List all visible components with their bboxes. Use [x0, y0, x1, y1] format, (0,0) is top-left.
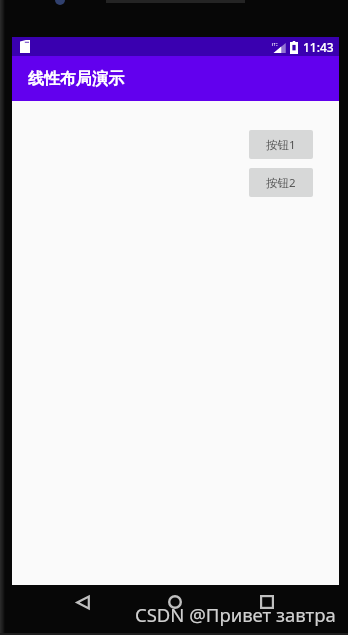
button[interactable]: 按钮2: [249, 168, 313, 197]
staticText: 按钮1: [266, 137, 296, 153]
button[interactable]: Recents: [254, 589, 279, 614]
button[interactable]: Home: [162, 589, 187, 614]
button[interactable]: 按钮1: [249, 130, 313, 159]
staticText: CSDN @Привет завтра: [135, 602, 336, 627]
staticText: 线性布局演示: [28, 69, 124, 89]
staticText: 按钮2: [266, 175, 296, 191]
button[interactable]: 线性布局演示: [12, 56, 339, 101]
staticText: 11:43: [303, 39, 334, 55]
button[interactable]: Back: [70, 590, 95, 615]
